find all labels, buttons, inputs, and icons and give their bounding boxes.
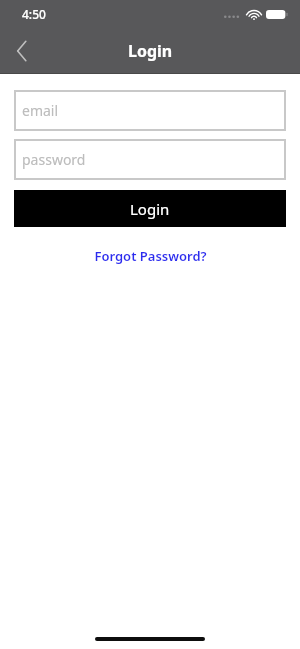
- staticText: password: [22, 150, 86, 169]
- staticText: 4:50: [22, 6, 46, 22]
- button[interactable]: Back: [0, 29, 44, 73]
- staticText: Login: [130, 199, 170, 219]
- staticText: email: [22, 101, 59, 120]
- button[interactable]: password: [14, 139, 286, 180]
- button[interactable]: email: [14, 90, 286, 131]
- button[interactable]: Forgot Password?: [0, 247, 300, 265]
- staticText: Login: [128, 40, 173, 62]
- button[interactable]: Login: [14, 190, 286, 227]
- staticText: Forgot Password?: [94, 247, 207, 265]
